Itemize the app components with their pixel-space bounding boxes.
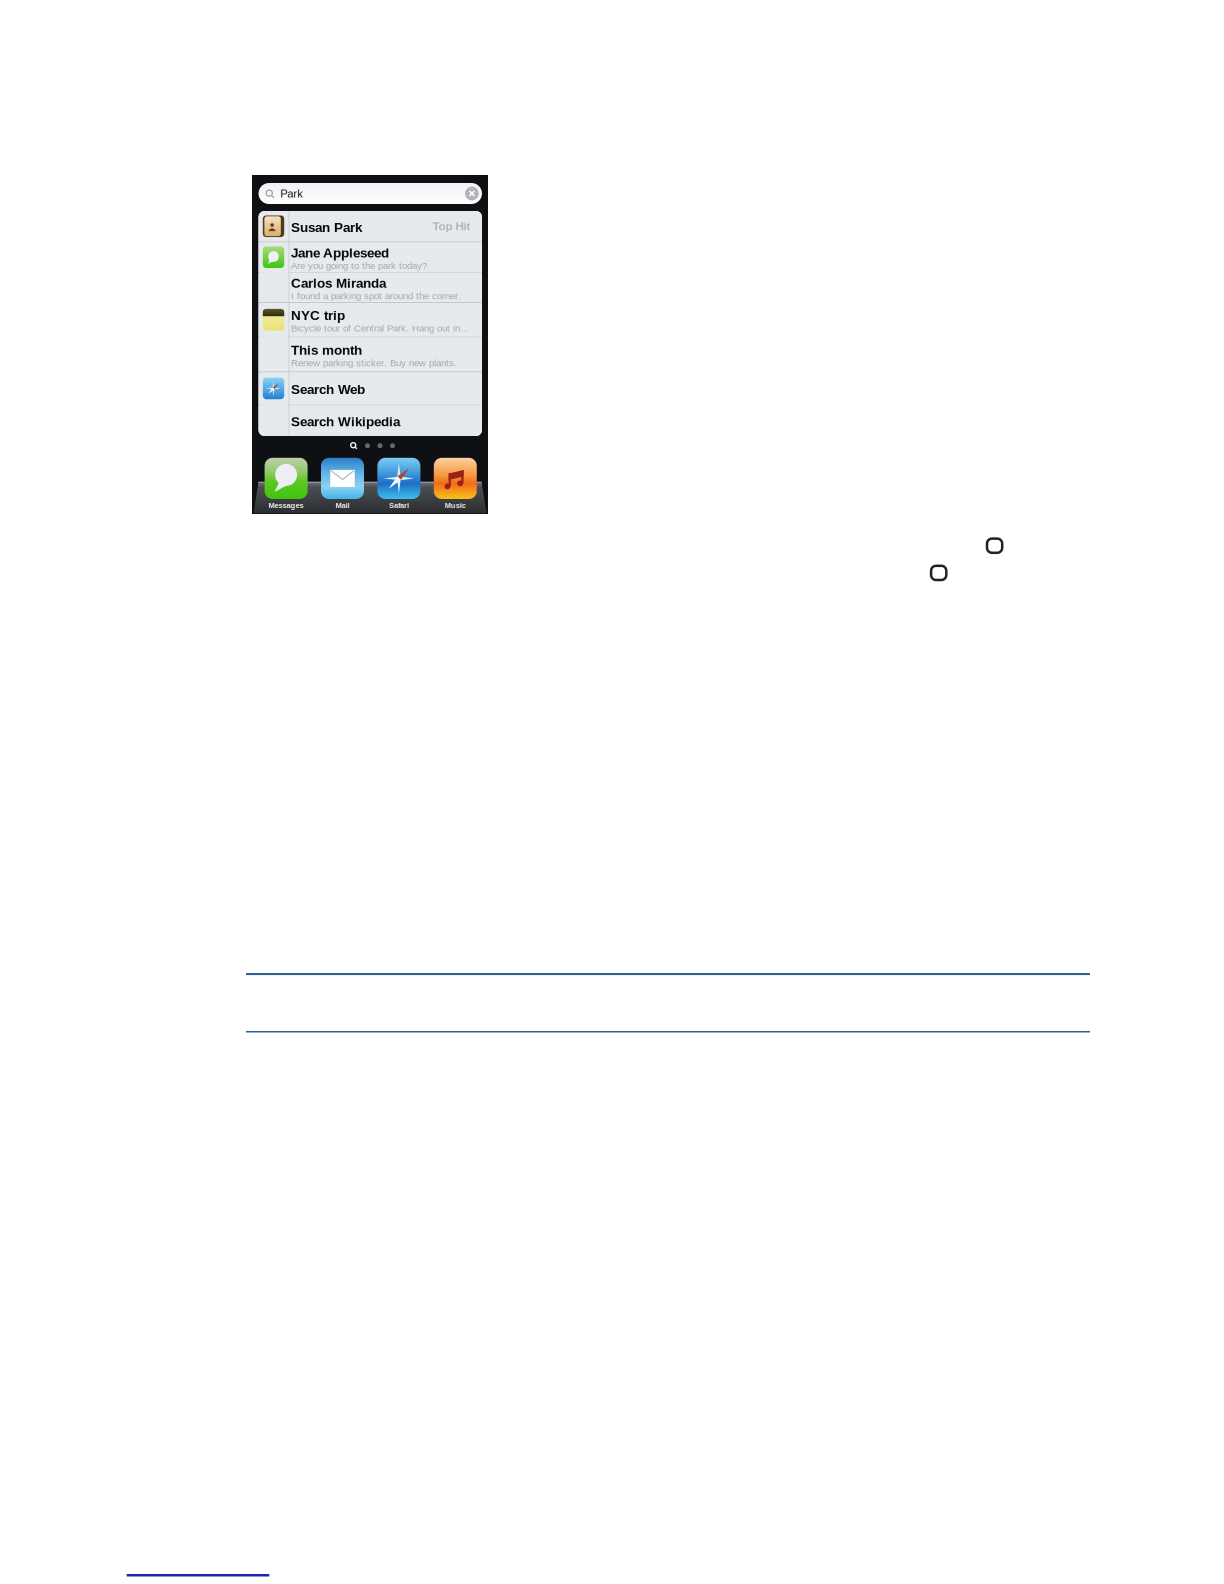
- staticText: Bicycle tour of Central Park. Hang out i…: [291, 323, 470, 334]
- button[interactable]: Jane Appleseed: [258, 242, 482, 272]
- staticText: Top Hit: [432, 220, 470, 233]
- staticText: Search Wikipedia: [291, 414, 400, 429]
- staticText: Search Web: [291, 382, 365, 397]
- button[interactable]: Music: [434, 458, 477, 509]
- button[interactable]: Carlos Miranda: [258, 273, 482, 302]
- button[interactable]: Search Wikipedia: [258, 405, 482, 436]
- button[interactable]: NYC trip: [258, 303, 482, 336]
- staticText: Jane Appleseed: [291, 245, 389, 260]
- button[interactable]: Clear search text: [464, 186, 479, 201]
- button[interactable]: Search Web: [258, 372, 482, 404]
- staticText: Carlos Miranda: [291, 276, 386, 291]
- staticText: This month: [291, 343, 362, 358]
- staticText: I found a parking spot around the corner…: [291, 291, 461, 301]
- button[interactable]: Messages: [265, 458, 308, 509]
- staticText: Mail: [335, 501, 349, 509]
- button[interactable]: This month: [258, 337, 482, 371]
- staticText: Messages: [269, 501, 304, 509]
- staticText: Safari: [389, 501, 409, 509]
- button[interactable]: Susan Park: [258, 211, 482, 241]
- staticText: Music: [445, 501, 466, 509]
- staticText: NYC trip: [291, 308, 345, 323]
- button[interactable]: Mail: [321, 458, 364, 509]
- button[interactable]: Park: [258, 183, 482, 204]
- staticText: Renew parking sticker. Buy new plants.: [291, 358, 457, 368]
- button[interactable]: Spotlight search page: [350, 442, 357, 449]
- button[interactable]: Safari: [377, 458, 420, 509]
- staticText: Are you going to the park today?: [291, 260, 427, 271]
- staticText: Park: [280, 187, 303, 200]
- staticText: Susan Park: [291, 220, 362, 235]
